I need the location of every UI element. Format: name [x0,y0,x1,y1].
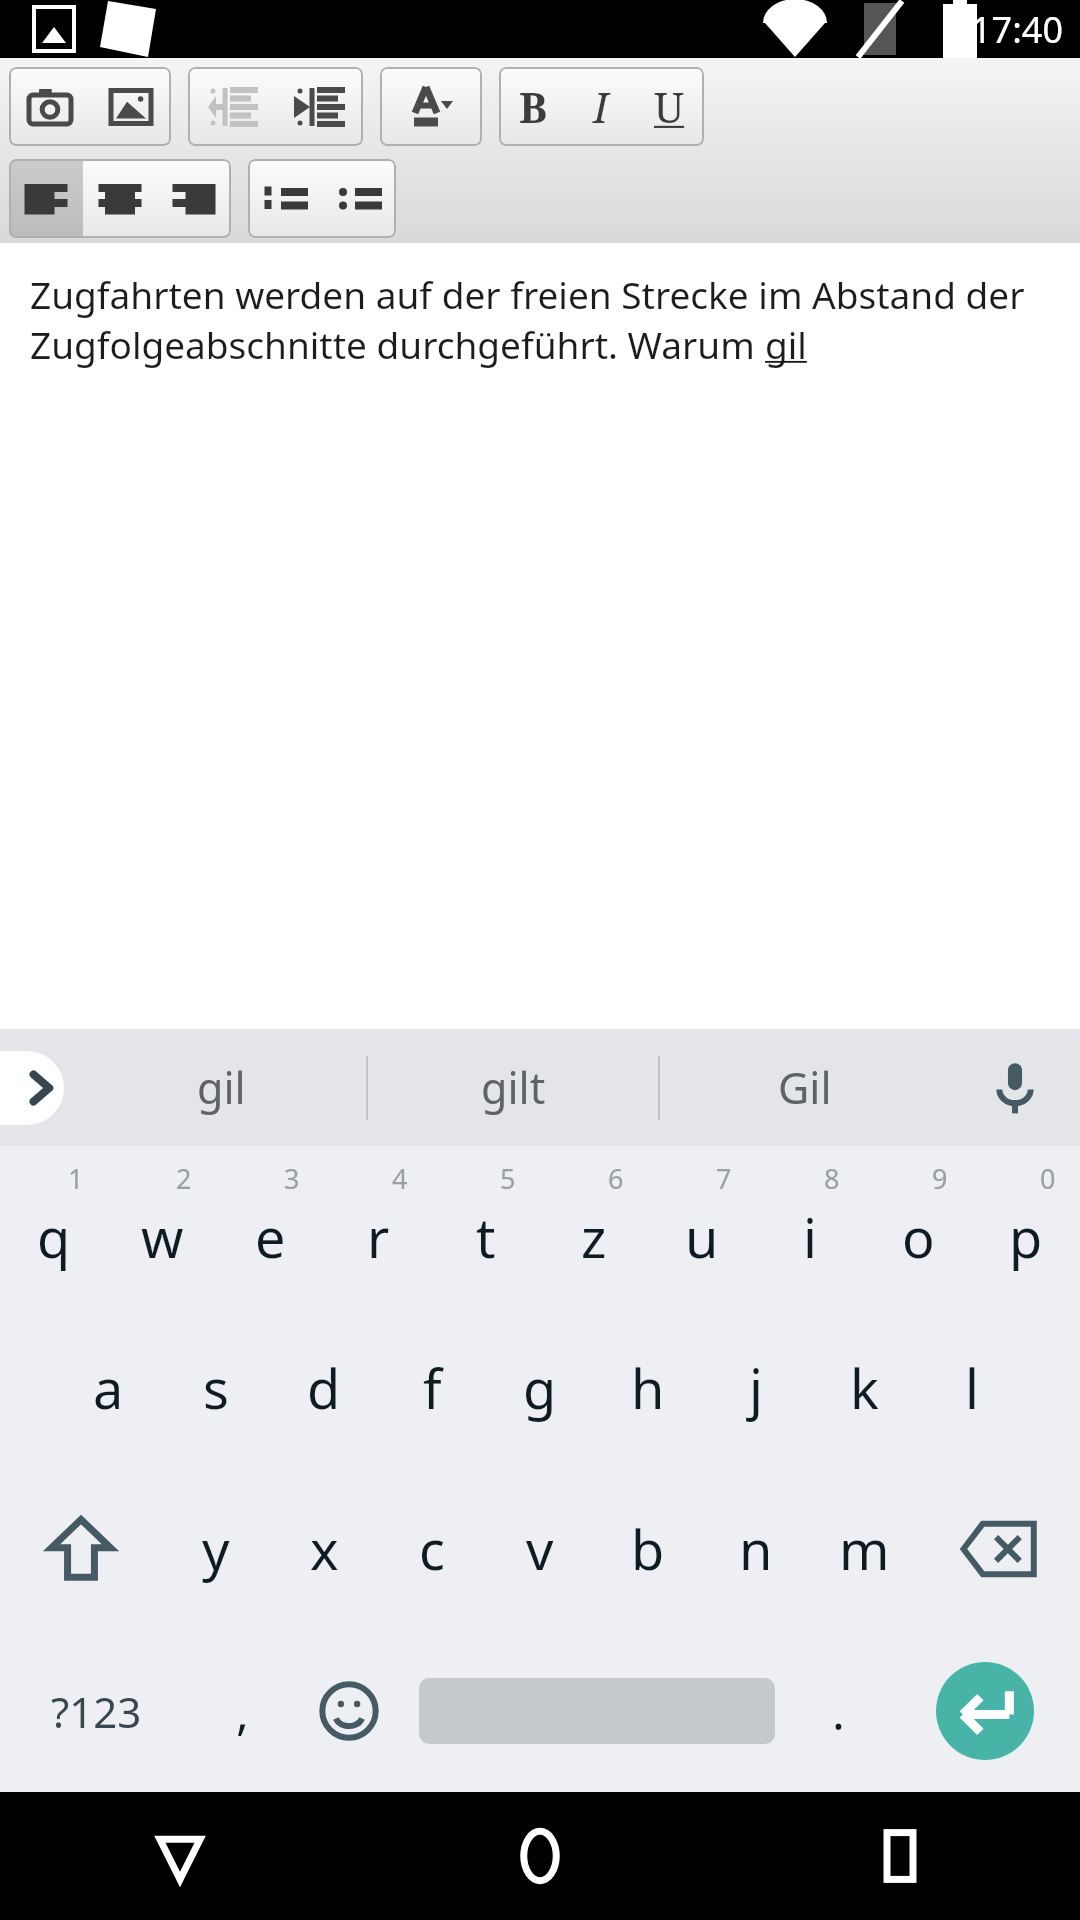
staticText: gilt [481,1058,546,1117]
staticText: p [1009,1200,1043,1274]
button[interactable]: gilt [368,1029,658,1146]
button[interactable]: s [162,1307,270,1468]
button[interactable]: 1 [0,1146,108,1307]
staticText: a [93,1351,124,1425]
staticText: e [255,1200,286,1274]
button[interactable]: 8 [756,1146,864,1307]
staticText: 7 [716,1160,732,1197]
button[interactable]: Format option [275,67,363,146]
button[interactable]: 5 [432,1146,540,1307]
button[interactable]: Format option [90,67,171,146]
button[interactable]: , [192,1630,293,1792]
button[interactable]: Space [405,1630,788,1792]
staticText: 1 [68,1160,84,1197]
button[interactable]: ?123 [0,1630,192,1792]
staticText: , [236,1679,249,1744]
staticText: 9 [932,1160,948,1197]
staticText: 3 [284,1160,300,1197]
button[interactable]: y [162,1468,270,1630]
staticText: t [476,1200,496,1274]
staticText: m [839,1512,890,1586]
button[interactable]: g [486,1307,594,1468]
button[interactable]: Format option [157,159,231,238]
staticText: Zugfahrten werden auf der freien Strecke… [30,269,1025,319]
staticText: l [965,1351,979,1425]
staticText: U [654,78,685,135]
button[interactable]: Home [360,1792,720,1920]
button[interactable]: Format option [9,67,90,146]
staticText: 8 [824,1160,840,1197]
button[interactable]: U [635,67,704,146]
button[interactable]: 7 [648,1146,756,1307]
button[interactable]: Format option [188,67,275,146]
button[interactable]: j [702,1307,810,1468]
button[interactable]: Voice input [950,1029,1080,1146]
button[interactable]: b [594,1468,702,1630]
button[interactable]: 9 [864,1146,972,1307]
button[interactable]: 6 [540,1146,648,1307]
button[interactable]: Gil [660,1029,950,1146]
staticText: 4 [392,1160,408,1197]
staticText: w [141,1200,184,1274]
staticText: x [310,1512,339,1586]
button[interactable]: Back [0,1792,360,1920]
staticText: . [832,1679,845,1744]
staticText: ?123 [51,1683,142,1740]
button[interactable]: Format option [9,159,83,238]
staticText: s [203,1351,229,1425]
staticText: B [519,78,548,135]
staticText: 6 [608,1160,624,1197]
button[interactable]: . [788,1630,889,1792]
staticText: Gil [778,1058,832,1117]
button[interactable]: x [270,1468,378,1630]
staticText: gil [197,1058,246,1117]
staticText: y [202,1512,230,1586]
button[interactable]: Emoji [293,1630,405,1792]
staticText: 0 [1040,1160,1056,1197]
button[interactable]: Recents [720,1792,1080,1920]
button[interactable]: k [810,1307,918,1468]
staticText: v [526,1512,554,1586]
button[interactable]: n [702,1468,810,1630]
staticText: b [631,1512,665,1586]
button[interactable]: m [810,1468,918,1630]
button[interactable]: v [486,1468,594,1630]
staticText: c [419,1512,445,1586]
button[interactable]: Format option [380,67,482,146]
button[interactable]: Format option [322,159,396,238]
staticText: q [37,1200,71,1274]
button[interactable]: Format option [248,159,322,238]
staticText: o [902,1200,935,1274]
staticText: 5 [500,1160,516,1197]
button[interactable]: 0 [972,1146,1080,1307]
button[interactable]: Enter [889,1630,1080,1792]
button[interactable]: I [567,67,635,146]
staticText: k [850,1351,879,1425]
button[interactable]: gil [76,1029,366,1146]
staticText: g [523,1351,557,1425]
staticText: gil [765,319,807,369]
staticText: 2 [176,1160,192,1197]
button[interactable]: c [378,1468,486,1630]
button[interactable]: Shift [0,1468,162,1630]
staticText: n [739,1512,773,1586]
staticText: h [631,1351,665,1425]
button[interactable]: l [918,1307,1026,1468]
button[interactable]: d [270,1307,378,1468]
button[interactable]: a [54,1307,162,1468]
staticText: Zugfolgeabschnitte durchgeführt. Warum [30,319,765,369]
button[interactable]: f [378,1307,486,1468]
button[interactable]: 3 [216,1146,324,1307]
button[interactable]: Backspace [918,1468,1080,1630]
staticText: u [685,1200,719,1274]
button[interactable]: Expand suggestions [0,1051,64,1125]
staticText: r [367,1200,390,1274]
staticText: f [423,1351,442,1425]
button[interactable]: 2 [108,1146,216,1307]
button[interactable]: 4 [324,1146,432,1307]
button[interactable]: h [594,1307,702,1468]
button[interactable]: Format option [83,159,157,238]
button[interactable]: B [499,67,567,146]
staticText: j [749,1351,763,1425]
staticText: i [803,1200,817,1274]
